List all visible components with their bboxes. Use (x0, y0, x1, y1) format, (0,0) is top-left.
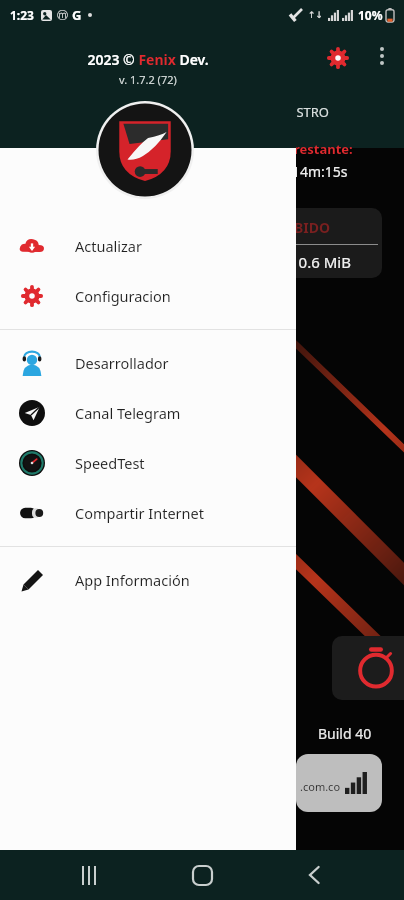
button[interactable]: Desarrollador (0, 338, 296, 388)
button[interactable]: Configuracion (0, 271, 296, 321)
staticText: 1:23 (10, 7, 34, 23)
staticText: Configuracion (75, 286, 171, 306)
button[interactable]: Home (178, 851, 226, 899)
staticText: Canal Telegram (75, 403, 181, 423)
button[interactable]: BIDO (286, 208, 382, 278)
staticText: restante: (294, 140, 353, 158)
staticText: Build 40 (318, 724, 372, 743)
button[interactable]: SpeedTest (0, 438, 296, 488)
button[interactable]: App Información (0, 555, 296, 605)
staticText: 10.6 MiB (290, 252, 351, 272)
staticText: 2023 © Fenix Dev. (87, 50, 209, 69)
button[interactable]: OK (332, 636, 404, 700)
staticText: SpeedTest (75, 453, 145, 473)
staticText: G (72, 6, 82, 24)
staticText: 10% (358, 7, 383, 23)
button[interactable]: Actualizar (0, 221, 296, 271)
button[interactable]: Configuración (320, 40, 356, 76)
staticText: Actualizar (75, 236, 142, 256)
staticText: App Información (75, 570, 190, 590)
staticText: ⓜ (57, 8, 68, 22)
button[interactable]: Recents (65, 851, 113, 899)
staticText: Compartir Internet (75, 503, 204, 523)
staticText: .com.co (300, 779, 341, 794)
button[interactable]: Canal Telegram (0, 388, 296, 438)
staticText: BIDO (294, 218, 331, 237)
staticText: Desarrollador (75, 353, 169, 373)
button[interactable]: .com.co (296, 754, 382, 812)
staticText: 14m:15s (292, 162, 348, 181)
staticText: v. 1.7.2 (72) (119, 72, 177, 87)
button[interactable]: Back (291, 851, 339, 899)
button[interactable]: Más opciones (366, 40, 398, 72)
staticText: ISTRO (292, 103, 330, 121)
button[interactable]: Compartir Internet (0, 488, 296, 538)
staticText: ↑↓ (308, 10, 324, 20)
